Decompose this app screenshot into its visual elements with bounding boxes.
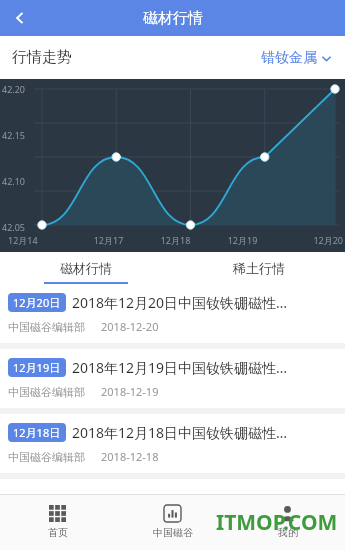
staticText: 首页 bbox=[48, 526, 68, 539]
button[interactable]: 12月19日 bbox=[0, 349, 345, 408]
staticText: 磁材行情 bbox=[143, 9, 203, 28]
staticText: 中国磁谷编辑部 bbox=[8, 320, 85, 334]
staticText: 2018-12-20 bbox=[101, 319, 159, 334]
staticText: 12月17 bbox=[75, 234, 142, 246]
staticText: 12月20 bbox=[276, 234, 343, 246]
staticText: 错钕金属 bbox=[261, 49, 317, 67]
staticText: 42.20 bbox=[2, 83, 26, 95]
staticText: 42.05 bbox=[2, 221, 26, 233]
staticText: 12月14 bbox=[8, 234, 75, 246]
staticText: 中国磁谷编辑部 bbox=[8, 385, 85, 399]
staticText: 12月19 bbox=[209, 234, 276, 246]
staticText: 42.15 bbox=[2, 129, 26, 141]
button[interactable]: 错钕金属 bbox=[258, 45, 335, 71]
staticText: ITMOP.COM bbox=[216, 508, 338, 537]
button[interactable]: 12月18日 bbox=[0, 414, 345, 473]
button[interactable]: 稀土行情 bbox=[172, 252, 345, 284]
staticText: 稀土行情 bbox=[233, 260, 285, 276]
staticText: 2018-12-18 bbox=[101, 449, 159, 464]
button[interactable]: Back bbox=[0, 0, 40, 36]
staticText: 12月18日 bbox=[13, 425, 61, 440]
staticText: 中国磁谷编辑部 bbox=[8, 450, 85, 464]
staticText: 12月18 bbox=[142, 234, 209, 246]
staticText: 42.10 bbox=[2, 175, 26, 187]
staticText: 2018年12月20日中国钕铁硼磁性… bbox=[72, 293, 288, 312]
staticText: 磁材行情 bbox=[60, 260, 112, 276]
staticText: 12月19日 bbox=[13, 360, 61, 375]
staticText: 2018年12月18日中国钕铁硼磁性… bbox=[72, 423, 288, 442]
button[interactable]: 首页 bbox=[0, 494, 115, 550]
button[interactable]: 12月20日 bbox=[0, 284, 345, 343]
button[interactable]: 中国磁谷 bbox=[115, 494, 230, 550]
button[interactable]: 我的 bbox=[230, 494, 345, 550]
staticText: 我的 bbox=[278, 526, 298, 539]
staticText: 2018-12-19 bbox=[101, 384, 159, 399]
staticText: 12月20日 bbox=[13, 295, 61, 310]
staticText: 行情走势 bbox=[12, 48, 72, 67]
button[interactable]: 磁材行情 bbox=[0, 252, 172, 284]
staticText: 中国磁谷 bbox=[153, 526, 193, 539]
staticText: 2018年12月19日中国钕铁硼磁性… bbox=[72, 358, 288, 377]
